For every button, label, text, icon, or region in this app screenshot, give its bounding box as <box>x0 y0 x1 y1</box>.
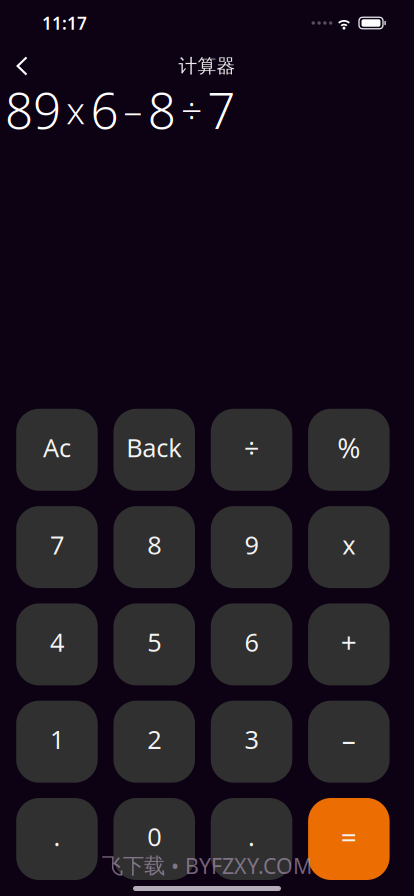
button[interactable]: x <box>308 506 390 588</box>
button[interactable]: Ac <box>16 409 98 491</box>
staticText: 2 <box>147 722 161 756</box>
staticText: 7 <box>50 528 64 561</box>
staticText: x <box>342 528 355 561</box>
button[interactable]: . <box>211 798 292 880</box>
staticText: x <box>66 85 85 135</box>
button[interactable]: 2 <box>113 701 195 783</box>
staticText: ÷ <box>181 85 202 135</box>
staticText: 5 <box>147 625 161 659</box>
button[interactable]: ÷ <box>211 409 292 491</box>
staticText: 飞下载 <box>102 853 165 879</box>
staticText: . <box>248 820 255 853</box>
staticText: . <box>53 820 60 853</box>
staticText: 计算器 <box>178 54 235 77</box>
staticText: 89 <box>5 77 61 142</box>
button[interactable]: Back <box>0 48 44 84</box>
button[interactable]: 8 <box>113 506 195 588</box>
staticText: 9 <box>244 528 258 561</box>
staticText: Ac <box>43 430 71 464</box>
staticText: 6 <box>90 77 118 142</box>
staticText: 8 <box>148 77 176 142</box>
staticText: 7 <box>207 77 235 142</box>
staticText: Back <box>126 430 182 464</box>
staticText: 3 <box>244 722 258 756</box>
button[interactable]: 3 <box>211 701 292 783</box>
staticText: ÷ <box>244 430 259 465</box>
button[interactable]: + <box>308 603 390 685</box>
staticText: 4 <box>50 625 64 659</box>
staticText: 8 <box>147 528 161 561</box>
button[interactable]: Back <box>113 409 195 491</box>
button[interactable]: 7 <box>16 506 98 588</box>
button[interactable]: 1 <box>16 701 98 783</box>
staticText: % <box>337 429 360 466</box>
button[interactable]: 5 <box>113 603 195 685</box>
staticText: 0 <box>147 820 161 853</box>
button[interactable]: 9 <box>211 506 292 588</box>
staticText: – <box>342 721 356 758</box>
button[interactable]: % <box>308 409 390 491</box>
button[interactable]: 4 <box>16 603 98 685</box>
staticText: – <box>124 85 143 135</box>
staticText: 6 <box>244 625 258 659</box>
button[interactable]: . <box>16 798 98 880</box>
staticText: 1 <box>50 722 64 756</box>
staticText: = <box>341 818 357 855</box>
staticText: BYFZXY.COM <box>185 852 312 880</box>
button[interactable]: 0 <box>113 798 195 880</box>
button[interactable]: – <box>308 701 390 783</box>
button[interactable]: 6 <box>211 603 292 685</box>
staticText: • <box>171 852 179 880</box>
staticText: 11:17 <box>42 11 87 34</box>
button[interactable]: = <box>308 798 390 880</box>
staticText: + <box>341 623 357 660</box>
